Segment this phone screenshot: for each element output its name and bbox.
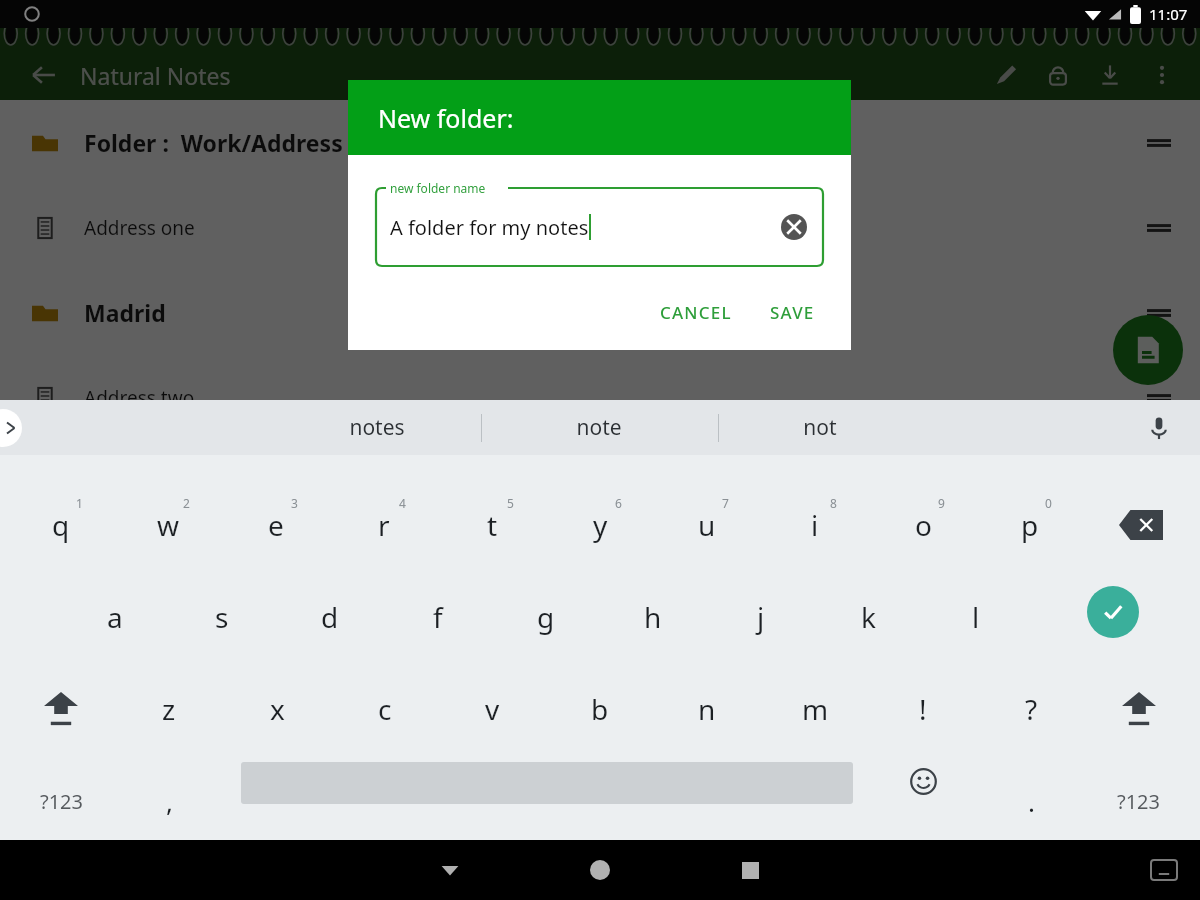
button[interactable]: a [65,572,165,662]
staticText: v [485,690,500,728]
button[interactable]: Lock [1032,50,1084,100]
staticText: a [107,598,123,636]
button[interactable]: s [172,572,272,662]
staticText: f [433,598,443,636]
staticText: o [915,506,932,544]
staticText: x [270,690,285,728]
button[interactable]: u [657,480,757,570]
staticText: e [268,506,284,544]
staticText: r [378,506,390,544]
button[interactable]: n [657,664,757,754]
button[interactable]: o [873,480,973,570]
staticText: 5 [507,495,514,511]
button[interactable]: j [711,572,811,662]
button[interactable]: v [442,664,542,754]
button[interactable]: note [519,400,679,455]
button[interactable]: not [740,400,900,455]
button[interactable]: l [926,572,1026,662]
button[interactable]: ! [873,664,973,754]
button[interactable]: Address one [0,185,1200,270]
button[interactable]: Folder : Work/Address [0,100,1200,185]
button[interactable]: q [11,480,111,570]
button[interactable]: Edit [980,50,1032,100]
button[interactable]: i [765,480,865,570]
staticText: s [215,598,229,636]
button[interactable]: y [550,480,650,570]
button[interactable]: Symbols [6,756,116,846]
button[interactable]: CANCEL [650,293,742,332]
staticText: y [593,506,608,544]
button[interactable]: c [335,664,435,754]
button[interactable]: m [765,664,865,754]
staticText: u [698,506,716,544]
button[interactable]: New note [1113,315,1183,385]
button[interactable]: Hide keyboard [420,840,480,900]
button[interactable]: Shift right [1089,664,1189,754]
staticText: new folder name [390,180,486,196]
button[interactable]: Symbols right [1083,756,1193,846]
staticText: A folder for my notes [390,214,589,241]
button[interactable]: Address two [0,355,1200,440]
staticText: h [644,598,662,636]
button[interactable]: Recents [720,840,780,900]
button[interactable]: Home [570,840,630,900]
staticText: ?123 [40,788,83,815]
staticText: z [162,690,176,728]
staticText: not [803,413,837,442]
staticText: CANCEL [660,301,732,324]
button[interactable]: SAVE [760,293,825,332]
button[interactable]: t [442,480,542,570]
button[interactable]: p [980,480,1080,570]
button[interactable]: d [280,572,380,662]
button[interactable]: h [603,572,703,662]
staticText: c [378,690,392,728]
staticText: p [1021,506,1039,544]
staticText: SAVE [770,301,815,324]
button[interactable]: Shift [11,664,111,754]
button[interactable]: z [119,664,219,754]
button[interactable]: Clear text [777,210,811,244]
staticText: j [757,598,765,636]
staticText: 0 [1045,495,1052,511]
button[interactable]: w [118,480,218,570]
staticText: m [802,690,829,728]
button[interactable]: notes [297,400,457,455]
staticText: Natural Notes [80,60,231,91]
staticText: Folder : Work/Address [84,127,343,158]
button[interactable]: x [227,664,327,754]
button[interactable]: k [818,572,918,662]
staticText: 9 [938,495,945,511]
button[interactable]: Backspace [1109,495,1173,555]
button[interactable]: Voice input [1138,407,1180,449]
button[interactable]: Switch keyboard [1142,848,1186,892]
staticText: ?123 [1117,788,1160,815]
button[interactable]: b [550,664,650,754]
button[interactable]: Back [24,55,64,95]
staticText: Madrid [84,297,166,328]
staticText: t [487,506,498,544]
button[interactable]: Comma [119,756,219,846]
button[interactable]: More options [1136,50,1188,100]
button[interactable]: Madrid [0,270,1200,355]
button[interactable]: g [496,572,596,662]
button[interactable]: ? [981,664,1081,754]
staticText: q [52,506,70,544]
staticText: b [591,690,609,728]
staticText: 8 [830,495,837,511]
staticText: notes [349,413,405,442]
button[interactable]: Period [986,756,1076,846]
button[interactable]: f [388,572,488,662]
staticText: note [576,413,622,442]
staticText: 4 [399,495,406,511]
staticText: Address two [84,385,195,411]
button[interactable]: Enter [1087,586,1139,638]
button[interactable]: Download [1084,50,1136,100]
button[interactable]: Emoji [898,756,948,806]
button[interactable]: r [334,480,434,570]
staticText: i [811,506,819,544]
button[interactable]: Expand suggestions [0,409,22,447]
button[interactable]: e [226,480,326,570]
staticText: , [166,784,173,819]
staticText: 3 [291,495,298,511]
